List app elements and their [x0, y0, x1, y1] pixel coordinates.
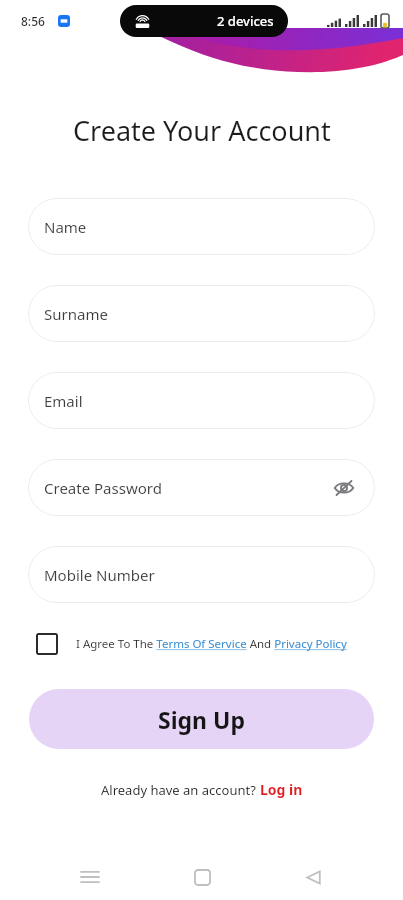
button[interactable]: Name	[28, 198, 375, 255]
button[interactable]: Show password	[329, 473, 359, 503]
button[interactable]: Sign Up	[29, 689, 374, 749]
button[interactable]: Back	[291, 855, 335, 899]
button[interactable]: Mobile Number	[28, 546, 375, 603]
staticText: Email	[44, 391, 83, 411]
button[interactable]: Recent apps	[68, 855, 112, 899]
button[interactable]: Home	[180, 855, 224, 899]
staticText: Log in	[260, 780, 303, 799]
button[interactable]: Create Password	[28, 459, 375, 516]
staticText: Already have an account?	[101, 781, 260, 799]
staticText: Name	[44, 217, 87, 237]
button[interactable]: Email	[28, 372, 375, 429]
button[interactable]: Surname	[28, 285, 375, 342]
staticText: Mobile Number	[44, 565, 155, 585]
button[interactable]: I agree to the terms	[36, 633, 58, 655]
other: Cast to devices	[134, 13, 151, 30]
staticText: Create Password	[44, 478, 162, 498]
staticText: Sign Up	[158, 704, 245, 735]
button[interactable]: Log in	[260, 780, 303, 799]
staticText: Create Your Account	[73, 112, 331, 149]
button[interactable]: Cast to devices	[120, 5, 288, 37]
staticText: 2 devices	[217, 12, 274, 30]
staticText: Surname	[44, 304, 108, 324]
button[interactable]: I Agree To The Terms Of Service And Priv…	[76, 636, 347, 652]
staticText: 8:56	[21, 13, 45, 29]
